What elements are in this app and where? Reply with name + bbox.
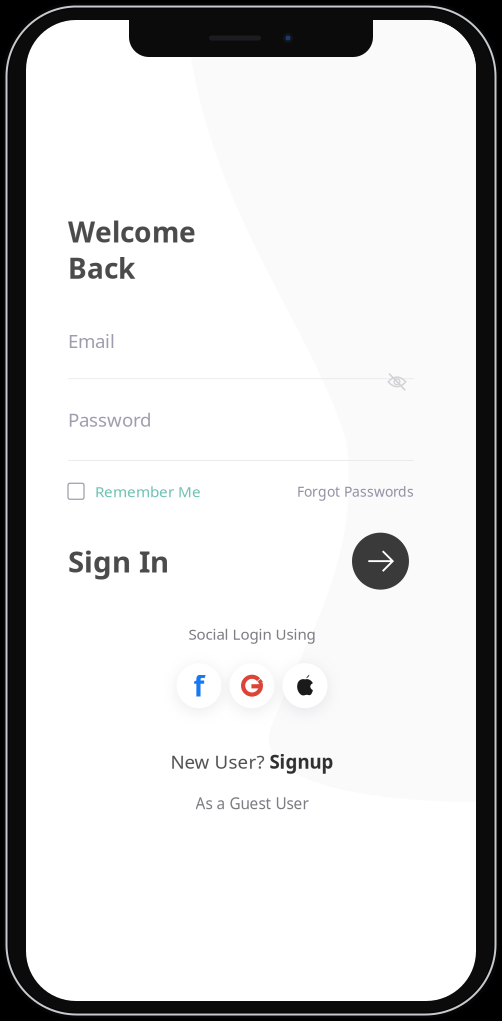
staticText: Welcome Back (68, 213, 196, 286)
staticText: Signup (269, 749, 333, 774)
button[interactable]: Show password (380, 362, 414, 396)
staticText: Social Login Using (188, 624, 315, 644)
button[interactable]: Sign In (68, 542, 169, 581)
button[interactable]: New User? (170, 745, 333, 778)
staticText: f (193, 667, 204, 704)
button[interactable]: Remember Me (68, 476, 201, 507)
staticText: Email (68, 328, 115, 353)
button[interactable]: Continue (352, 533, 409, 590)
button[interactable]: As a Guest User (195, 789, 308, 818)
staticText: Remember Me (95, 481, 201, 502)
button[interactable]: Sign in with Google (225, 659, 278, 712)
button[interactable]: Sign in with Facebook (172, 659, 225, 712)
staticText: Forgot Passwords (297, 482, 414, 501)
staticText: Password (68, 407, 151, 432)
button[interactable]: Sign in with Apple (278, 659, 331, 712)
staticText: Sign In (68, 542, 169, 581)
staticText: New User? (170, 749, 269, 774)
button[interactable]: Forgot Passwords (297, 477, 414, 506)
staticText: As a Guest User (195, 793, 308, 814)
